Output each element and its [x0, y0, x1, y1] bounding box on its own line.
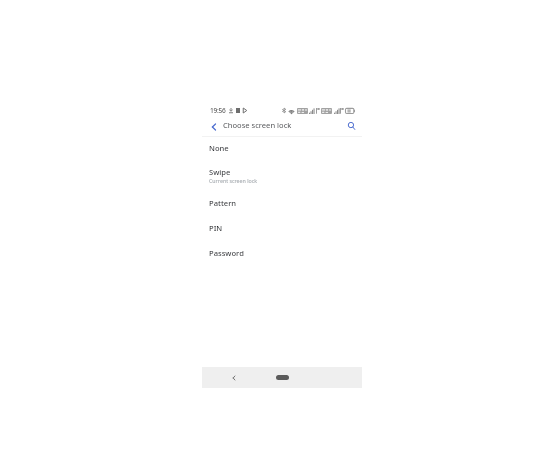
- button[interactable]: Pattern: [202, 192, 362, 216]
- staticText: Current screen lock: [209, 177, 258, 184]
- button[interactable]: Search: [344, 119, 358, 133]
- button[interactable]: Back: [207, 120, 220, 133]
- button[interactable]: Password: [202, 242, 362, 266]
- button[interactable]: Back: [228, 372, 239, 383]
- button[interactable]: Swipe: [202, 161, 362, 185]
- button[interactable]: None: [202, 137, 362, 161]
- staticText: Choose screen lock: [223, 120, 292, 130]
- staticText: Password: [209, 248, 244, 258]
- button[interactable]: Home: [273, 371, 291, 383]
- staticText: Swipe: [209, 167, 231, 177]
- staticText: None: [209, 143, 229, 153]
- staticText: 19:56: [210, 106, 226, 115]
- staticText: PIN: [209, 223, 223, 233]
- staticText: Pattern: [209, 198, 237, 208]
- button[interactable]: PIN: [202, 217, 362, 241]
